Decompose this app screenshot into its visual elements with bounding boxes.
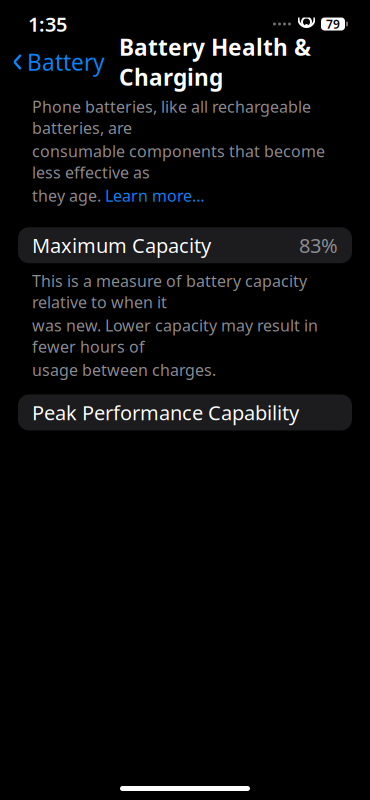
staticText: they age. (32, 185, 101, 206)
staticText: 79 (326, 16, 340, 32)
button[interactable]: Peak Performance Capability (18, 394, 352, 430)
staticText: Learn more… (105, 185, 205, 206)
button[interactable]: Battery (12, 41, 105, 83)
staticText: was new. Lower capacity may result in fe… (32, 315, 318, 357)
staticText: This is a measure of battery capacity re… (32, 270, 307, 313)
staticText: 1:35 (28, 11, 67, 37)
staticText: Battery (27, 47, 105, 77)
staticText: 83% (299, 232, 338, 259)
staticText: Phone batteries, like all rechargeable b… (32, 96, 311, 138)
button[interactable]: Learn more… (105, 185, 205, 206)
staticText: Maximum Capacity (32, 232, 211, 259)
staticText: Peak Performance Capability (32, 399, 299, 426)
staticText: consumable components that become less e… (32, 140, 325, 183)
staticText: Battery Health & Charging (119, 32, 311, 92)
button[interactable]: Maximum Capacity (18, 227, 352, 263)
staticText: usage between charges. (32, 359, 216, 380)
